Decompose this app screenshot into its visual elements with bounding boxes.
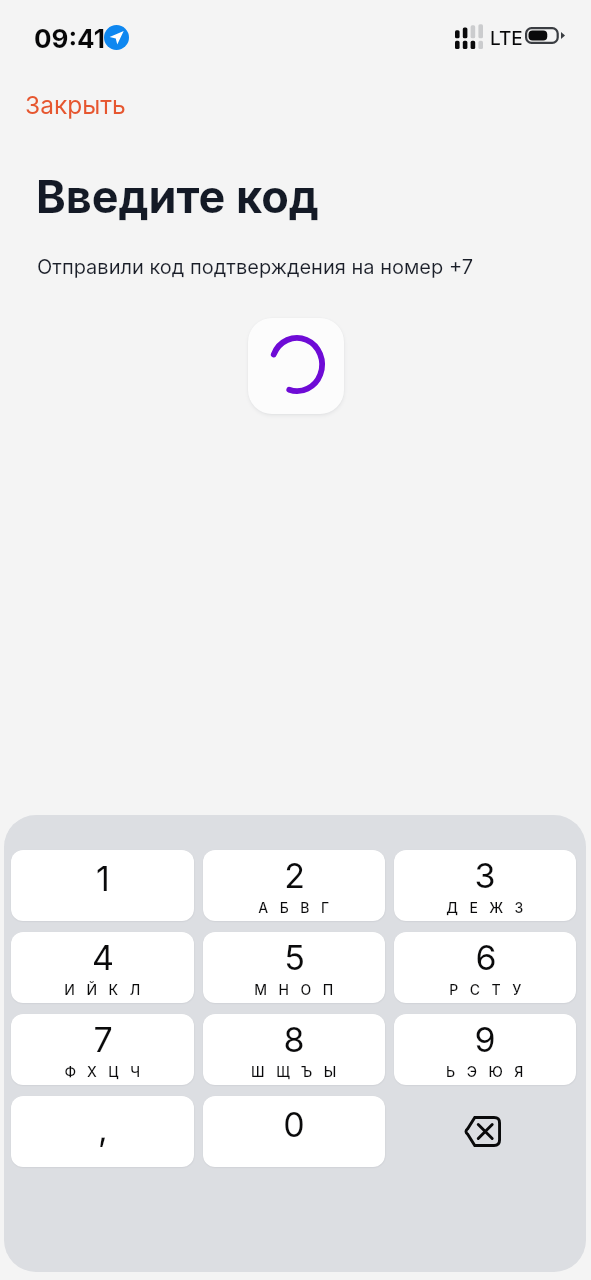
button[interactable]: 7: [11, 1014, 194, 1085]
staticText: 09:41: [34, 23, 105, 54]
staticText: ДЕЖЗ: [446, 899, 535, 916]
staticText: 7: [93, 1019, 113, 1060]
staticText: МНОП: [254, 981, 345, 998]
staticText: 9: [474, 1019, 496, 1060]
button[interactable]: 6: [394, 932, 576, 1003]
staticText: ИЙКЛ: [64, 981, 152, 998]
staticText: 6: [475, 937, 497, 978]
button[interactable]: 9: [394, 1014, 576, 1085]
staticText: ШЩЪЫ: [251, 1063, 348, 1080]
button[interactable]: 5: [203, 932, 385, 1003]
button[interactable]: 8: [203, 1014, 385, 1085]
staticText: РСТУ: [449, 981, 533, 998]
staticText: Отправили код подтверждения на номер +7: [37, 255, 474, 279]
staticText: Введите код: [36, 169, 319, 223]
staticText: ,: [98, 1108, 108, 1149]
button[interactable]: 2: [203, 850, 385, 921]
staticText: 5: [284, 937, 305, 978]
staticText: 3: [474, 855, 496, 896]
staticText: Закрыть: [25, 90, 126, 120]
button[interactable]: 1: [11, 850, 194, 921]
button[interactable]: 4: [11, 932, 194, 1003]
button[interactable]: 0: [203, 1096, 385, 1167]
staticText: АБВГ: [258, 899, 341, 916]
staticText: ФХЦЧ: [64, 1063, 152, 1080]
button[interactable]: Закрыть: [16, 84, 135, 126]
staticText: 2: [284, 855, 305, 896]
button[interactable]: ,: [11, 1096, 194, 1167]
button[interactable]: Backspace: [394, 1096, 576, 1167]
staticText: LTE: [490, 27, 523, 50]
staticText: 8: [283, 1019, 305, 1060]
button[interactable]: 3: [394, 850, 576, 921]
staticText: 1: [96, 858, 110, 899]
staticText: 0: [283, 1104, 305, 1145]
staticText: ЬЭЮЯ: [446, 1063, 535, 1080]
staticText: 4: [92, 937, 114, 978]
